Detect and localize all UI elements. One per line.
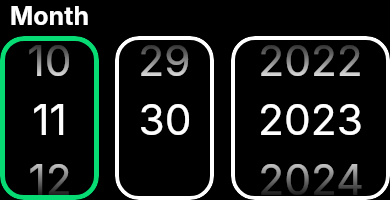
button[interactable]: 10 [0, 36, 99, 200]
button[interactable]: 2022 [231, 36, 390, 200]
staticText: 2024 [258, 154, 364, 200]
staticText: 11 [32, 94, 67, 145]
staticText: 30 [138, 94, 192, 145]
staticText: 10 [27, 36, 72, 86]
staticText: 2022 [258, 36, 363, 86]
staticText: 29 [138, 36, 191, 86]
staticText: 2023 [258, 94, 363, 145]
staticText: Month [10, 1, 89, 31]
staticText: 12 [28, 154, 72, 200]
button[interactable]: 29 [115, 36, 214, 200]
